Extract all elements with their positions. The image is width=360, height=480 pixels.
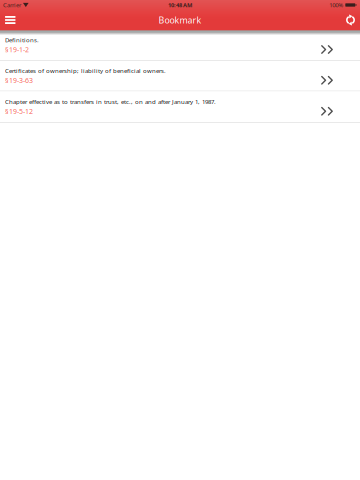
button[interactable]: Certificates of ownership; liability of … [0, 61, 360, 91]
staticText: 10:48 AM [168, 1, 192, 9]
staticText: Certificates of ownership; liability of … [5, 66, 166, 75]
staticText: 100% [329, 1, 343, 9]
button[interactable]: Definitions. [0, 30, 360, 61]
button[interactable]: Refresh [337, 10, 360, 30]
staticText: Definitions. [5, 36, 39, 44]
button[interactable]: Menu [0, 10, 22, 30]
staticText: §19-5-12 [5, 106, 33, 116]
staticText: Carrier [3, 1, 21, 9]
button[interactable]: Chapter effective as to transfers in tru… [0, 91, 360, 123]
staticText: §19-1-2 [5, 45, 29, 54]
staticText: Bookmark [158, 14, 201, 26]
staticText: §19-3-63 [5, 75, 33, 85]
staticText: Chapter effective as to transfers in tru… [5, 97, 216, 106]
